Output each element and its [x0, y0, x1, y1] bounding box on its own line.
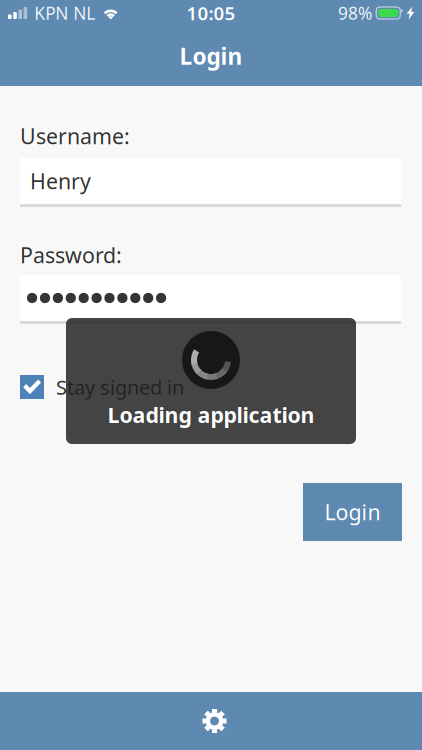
staticText: KPN NL: [34, 1, 95, 24]
button[interactable]: Stay signed in: [20, 375, 402, 399]
staticText: 98%: [338, 1, 372, 24]
button[interactable]: Settings: [0, 692, 422, 750]
button[interactable]: Login: [303, 483, 402, 541]
staticText: Login: [179, 41, 242, 71]
staticText: Password:: [20, 241, 122, 269]
staticText: 10:05: [186, 1, 235, 25]
staticText: Username:: [20, 122, 130, 150]
staticText: Login: [324, 498, 380, 526]
staticText: Stay signed in: [56, 374, 184, 400]
staticText: Loading application: [107, 401, 314, 429]
staticText: Henry: [30, 167, 91, 195]
